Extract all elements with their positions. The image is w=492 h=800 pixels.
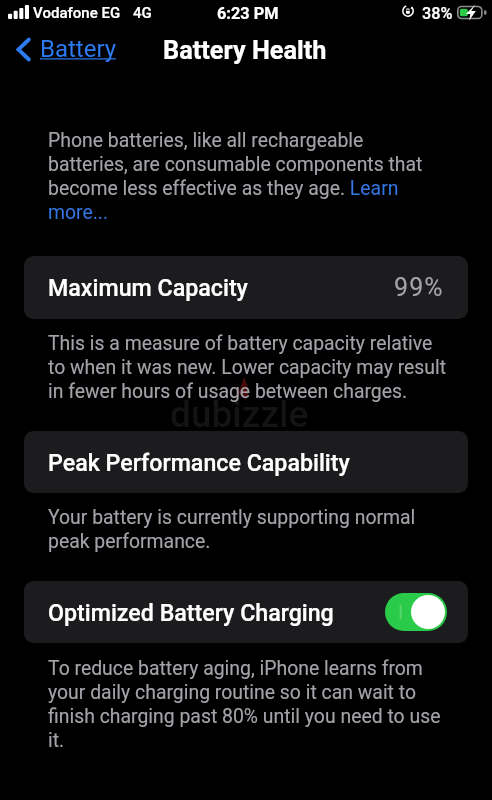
staticText: Phone batteries, like all rechargeable b… xyxy=(48,129,428,223)
staticText: Battery xyxy=(40,35,117,63)
button[interactable]: Battery xyxy=(12,32,123,66)
button[interactable]: Maximum Capacity xyxy=(24,256,468,319)
staticText: Your battery is currently supporting nor… xyxy=(48,506,448,552)
button[interactable]: Optimized Battery Charging xyxy=(24,581,468,643)
button[interactable]: Peak Performance Capability xyxy=(24,431,468,493)
staticText: 99% xyxy=(394,273,444,302)
other: Rotation lock xyxy=(402,5,414,17)
staticText: Optimized Battery Charging xyxy=(48,599,334,626)
staticText: 6:23 PM xyxy=(217,4,279,23)
staticText: Vodafone EG xyxy=(33,4,121,22)
staticText: This is a measure of battery capacity re… xyxy=(48,332,448,402)
other: Battery 38 percent charging xyxy=(457,5,487,20)
button[interactable]: Optimized Battery Charging toggle xyxy=(385,593,447,631)
staticText: Peak Performance Capability xyxy=(48,449,350,476)
staticText: 38% xyxy=(422,4,453,23)
staticText: To reduce battery aging, iPhone learns f… xyxy=(48,657,448,751)
staticText: Maximum Capacity xyxy=(48,274,248,301)
staticText: dubizzle xyxy=(170,393,309,436)
staticText: 4G xyxy=(133,4,152,22)
staticText: Battery Health xyxy=(163,36,327,66)
